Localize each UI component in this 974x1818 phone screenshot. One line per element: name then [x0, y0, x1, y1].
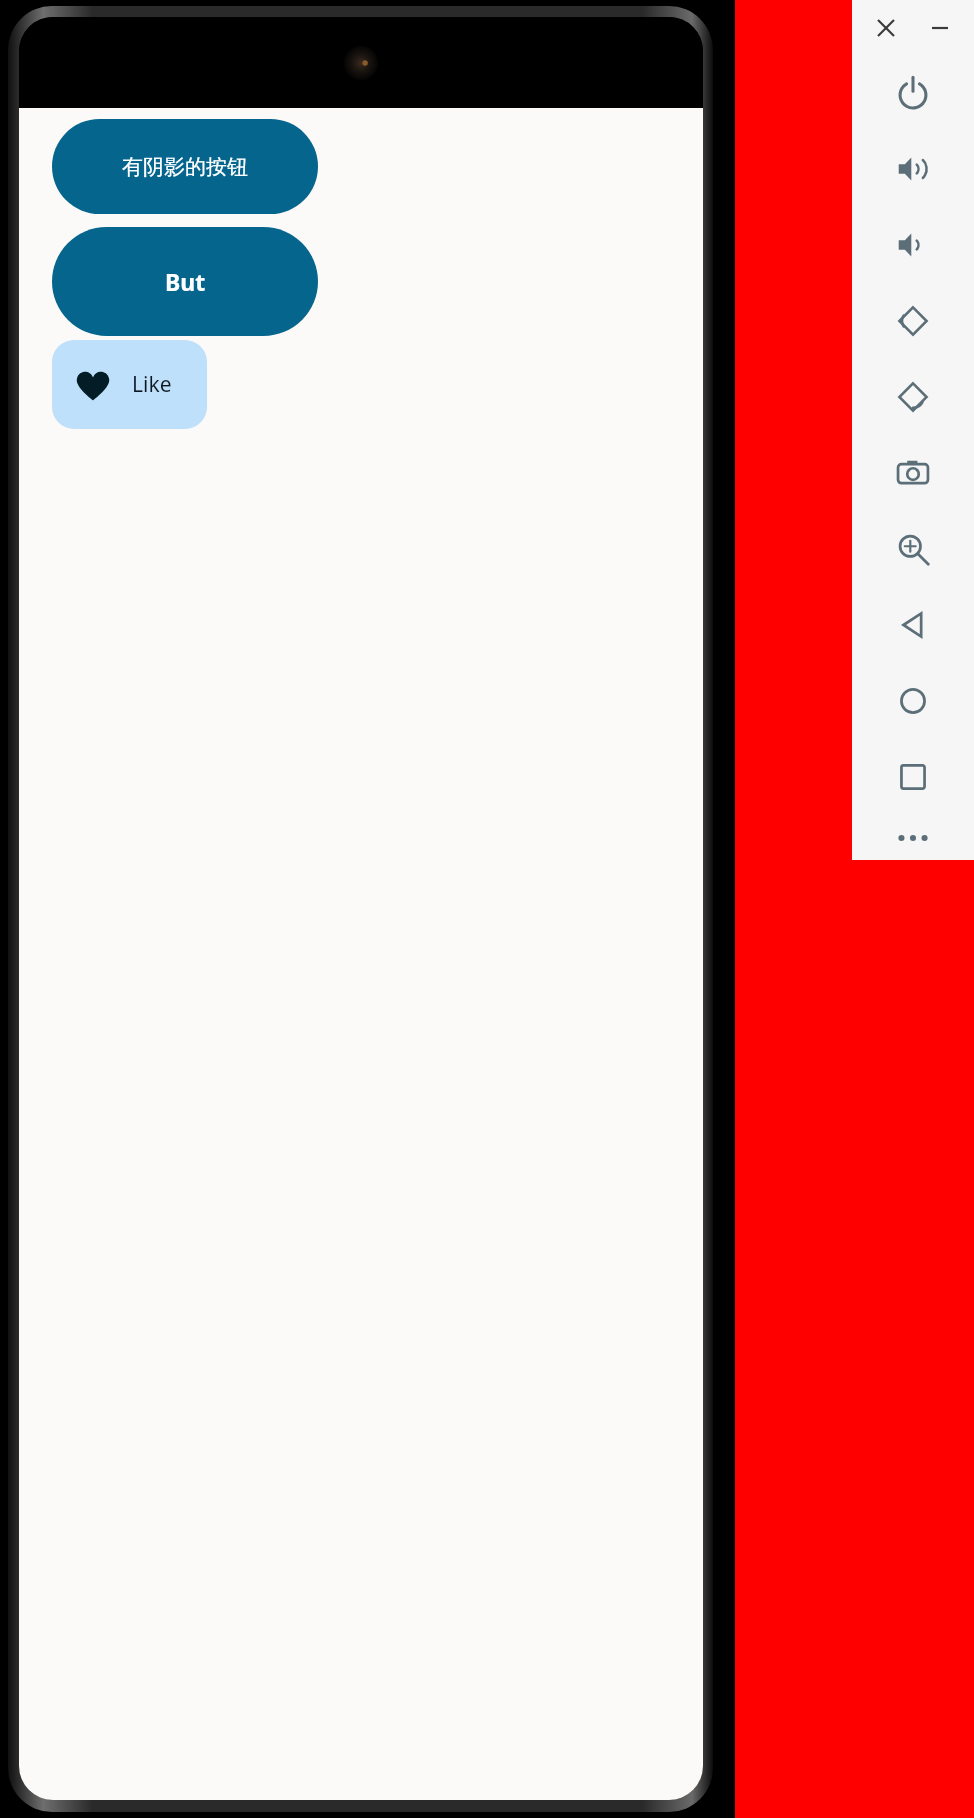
button[interactable]: Close: [869, 11, 903, 45]
button[interactable]: More: [875, 815, 951, 860]
button[interactable]: Volume down: [875, 207, 951, 283]
button[interactable]: Overview: [875, 739, 951, 815]
button[interactable]: Take screenshot: [875, 435, 951, 511]
button[interactable]: Zoom: [875, 511, 951, 587]
button[interactable]: Like: [52, 340, 207, 429]
button[interactable]: Power: [875, 55, 951, 131]
staticText: But: [165, 266, 206, 297]
button[interactable]: Rotate right: [875, 359, 951, 435]
button[interactable]: Minimize: [923, 11, 957, 45]
staticText: Like: [132, 370, 172, 399]
button[interactable]: Back: [875, 587, 951, 663]
button[interactable]: 有阴影的按钮: [52, 119, 318, 214]
staticText: 有阴影的按钮: [122, 154, 248, 180]
button[interactable]: But: [52, 227, 318, 336]
button[interactable]: Volume up: [875, 131, 951, 207]
button[interactable]: Home: [875, 663, 951, 739]
button[interactable]: Rotate left: [875, 283, 951, 359]
